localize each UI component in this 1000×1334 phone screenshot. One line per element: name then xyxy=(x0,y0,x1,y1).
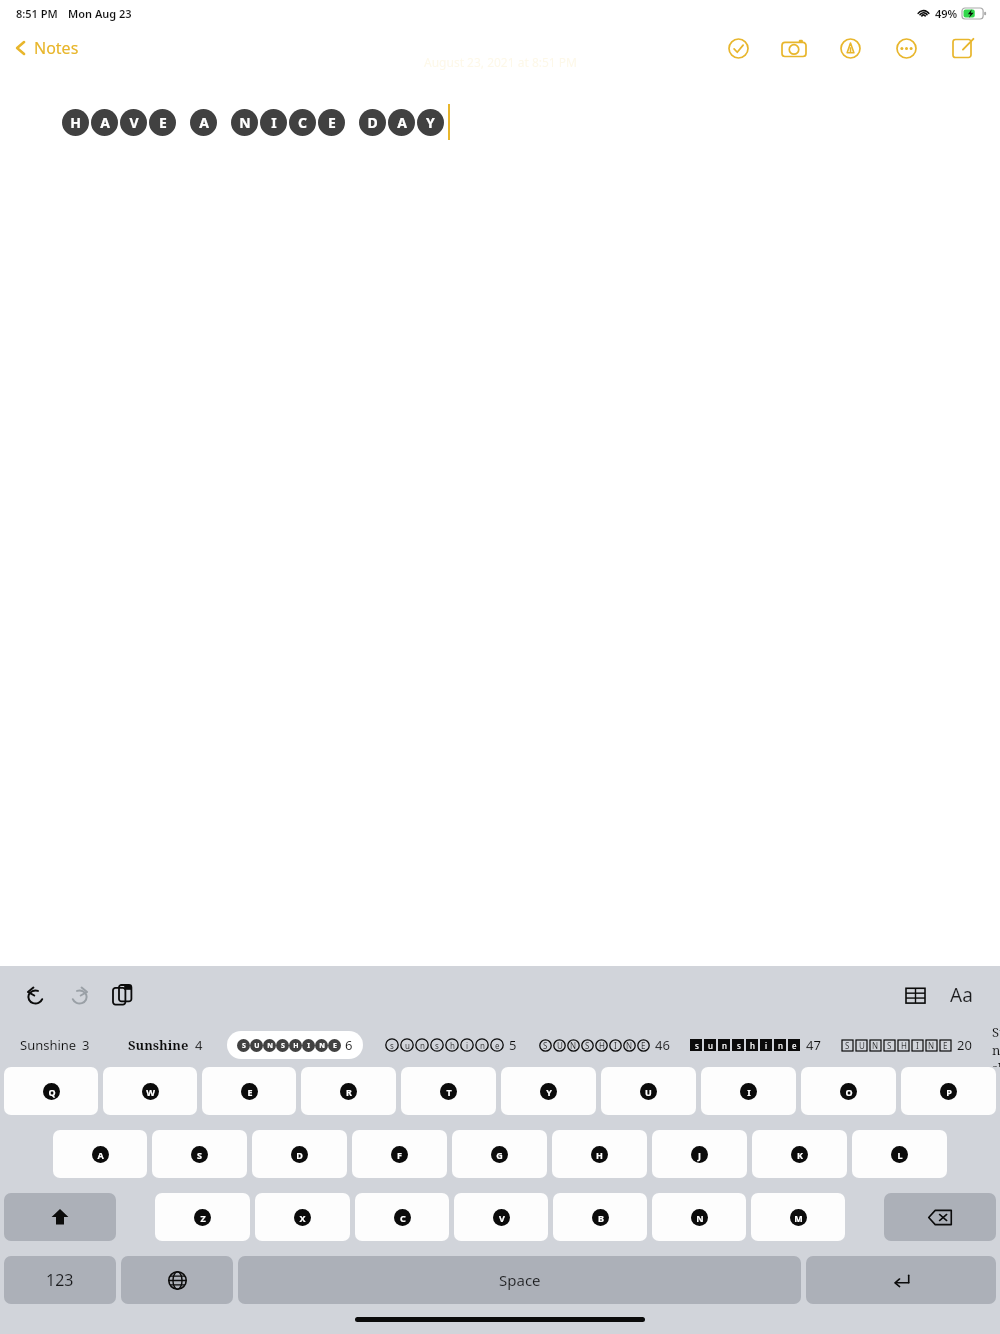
button[interactable]: Checklist xyxy=(720,30,756,66)
button[interactable]: A xyxy=(53,1130,147,1178)
staticText: Space xyxy=(499,1270,541,1290)
staticText: S xyxy=(242,1041,246,1051)
staticText: D xyxy=(296,1149,303,1161)
button[interactable]: Camera xyxy=(776,30,812,66)
staticText: n xyxy=(778,1040,783,1051)
staticText: i xyxy=(765,1040,768,1051)
button[interactable]: Return xyxy=(806,1256,996,1304)
staticText: August 23, 2021 at 8:51 PM xyxy=(424,54,577,70)
button[interactable]: I xyxy=(701,1067,796,1115)
staticText: Sunshine xyxy=(20,1036,77,1054)
staticText: C xyxy=(298,113,307,132)
button[interactable]: Q xyxy=(4,1067,98,1115)
button[interactable]: R xyxy=(301,1067,396,1115)
button[interactable]: Markup xyxy=(832,30,868,66)
button[interactable]: Paste xyxy=(106,978,140,1012)
button[interactable]: S xyxy=(227,1031,363,1059)
button[interactable]: D xyxy=(252,1130,347,1178)
staticText: h xyxy=(750,1040,755,1051)
button[interactable]: Space xyxy=(238,1256,801,1304)
button[interactable]: N xyxy=(652,1193,746,1241)
button[interactable]: Redo xyxy=(62,978,96,1012)
button[interactable]: S xyxy=(539,1036,670,1054)
button[interactable]: K xyxy=(752,1130,847,1178)
staticText: Q xyxy=(48,1086,56,1098)
button[interactable]: Z xyxy=(155,1193,250,1241)
button[interactable]: L xyxy=(852,1130,947,1178)
staticText: D xyxy=(367,113,378,132)
button[interactable]: G xyxy=(452,1130,547,1178)
staticText: Sunshine xyxy=(128,1036,189,1054)
button[interactable]: S xyxy=(152,1130,247,1178)
staticText: V xyxy=(499,1212,505,1224)
button[interactable]: F xyxy=(352,1130,447,1178)
button[interactable]: J xyxy=(652,1130,747,1178)
button[interactable]: Table xyxy=(898,978,932,1012)
staticText: Y xyxy=(426,113,435,132)
staticText: W xyxy=(146,1086,155,1098)
button[interactable]: P xyxy=(901,1067,996,1115)
staticText: 49% xyxy=(935,6,958,21)
staticText: s xyxy=(695,1040,699,1051)
button[interactable]: E xyxy=(202,1067,296,1115)
button[interactable]: New note xyxy=(944,30,980,66)
button[interactable]: V xyxy=(454,1193,548,1241)
staticText: e xyxy=(792,1040,797,1051)
button[interactable]: Backspace xyxy=(884,1193,996,1241)
staticText: E xyxy=(333,1041,337,1051)
staticText: C xyxy=(400,1212,406,1224)
staticText: N xyxy=(239,113,251,132)
button[interactable]: Sunshine xyxy=(128,1036,203,1054)
staticText: s xyxy=(390,1040,394,1051)
button[interactable]: C xyxy=(355,1193,449,1241)
staticText: A xyxy=(397,113,407,132)
staticText: N xyxy=(626,1040,633,1051)
staticText: 46 xyxy=(655,1036,670,1054)
button[interactable]: s xyxy=(385,1036,517,1054)
staticText: G xyxy=(496,1149,503,1161)
button[interactable]: H xyxy=(552,1130,647,1178)
staticText: U xyxy=(645,1086,652,1098)
button[interactable]: U xyxy=(601,1067,696,1115)
button[interactable]: Shift xyxy=(4,1193,116,1241)
button[interactable]: Sunshine xyxy=(20,1036,90,1054)
staticText: E xyxy=(247,1086,253,1098)
staticText: E xyxy=(328,113,336,132)
staticText: N xyxy=(872,1040,879,1051)
staticText: V xyxy=(129,113,139,132)
button[interactable]: 123 xyxy=(4,1256,116,1304)
staticText: s xyxy=(435,1040,439,1051)
staticText: T xyxy=(446,1086,452,1098)
staticText: Y xyxy=(546,1086,552,1098)
button[interactable]: S xyxy=(841,1036,972,1054)
staticText: U xyxy=(254,1041,260,1051)
button[interactable]: T xyxy=(401,1067,496,1115)
button[interactable]: Undo xyxy=(18,978,52,1012)
button[interactable]: Sunshine xyxy=(992,1023,1000,1067)
staticText: A xyxy=(97,1149,104,1161)
button[interactable]: More xyxy=(888,30,924,66)
staticText: Mon Aug 23 xyxy=(68,6,132,21)
staticText: I xyxy=(271,113,277,132)
button[interactable]: Switch language xyxy=(121,1256,233,1304)
staticText: Z xyxy=(200,1212,206,1224)
staticText: A xyxy=(100,113,110,132)
button[interactable]: Notes xyxy=(14,37,79,59)
staticText: I xyxy=(307,1041,310,1051)
staticText: S xyxy=(585,1040,590,1051)
staticText: B xyxy=(598,1212,604,1224)
button[interactable]: Y xyxy=(501,1067,596,1115)
button[interactable]: Text format xyxy=(944,978,978,1012)
button[interactable]: X xyxy=(255,1193,350,1241)
button[interactable]: B xyxy=(553,1193,647,1241)
staticText: N xyxy=(696,1212,704,1224)
staticText: S xyxy=(887,1040,892,1051)
button[interactable]: O xyxy=(801,1067,896,1115)
staticText: N xyxy=(928,1040,935,1051)
button[interactable]: M xyxy=(751,1193,845,1241)
button[interactable]: s xyxy=(690,1036,821,1054)
staticText: N xyxy=(319,1041,325,1051)
button[interactable]: W xyxy=(103,1067,197,1115)
staticText: E xyxy=(159,113,167,132)
staticText: h xyxy=(450,1040,455,1051)
